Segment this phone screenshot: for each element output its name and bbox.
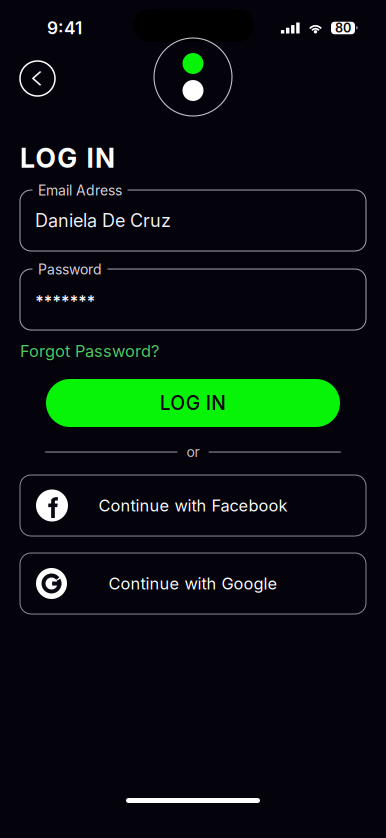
button[interactable]: Continue with Facebook <box>20 475 366 536</box>
staticText: Forgot Password? <box>20 341 159 361</box>
staticText: ******* <box>35 292 96 311</box>
staticText: Password <box>38 261 102 278</box>
staticText: LOG IN <box>160 391 226 415</box>
button[interactable]: Continue with Google <box>20 553 366 614</box>
staticText: Daniela De Cruz <box>35 210 171 231</box>
staticText: or <box>186 443 199 460</box>
staticText: 80 <box>335 20 351 36</box>
staticText: Continue with Facebook <box>98 496 287 515</box>
staticText: Email Adress <box>38 182 122 199</box>
staticText: LOG IN <box>20 142 115 174</box>
button[interactable]: Back <box>20 61 55 96</box>
button[interactable]: LOG IN <box>46 379 340 427</box>
staticText: Continue with Google <box>108 574 277 593</box>
button[interactable]: Forgot Password? <box>20 341 170 361</box>
staticText: 9:41 <box>47 17 82 38</box>
